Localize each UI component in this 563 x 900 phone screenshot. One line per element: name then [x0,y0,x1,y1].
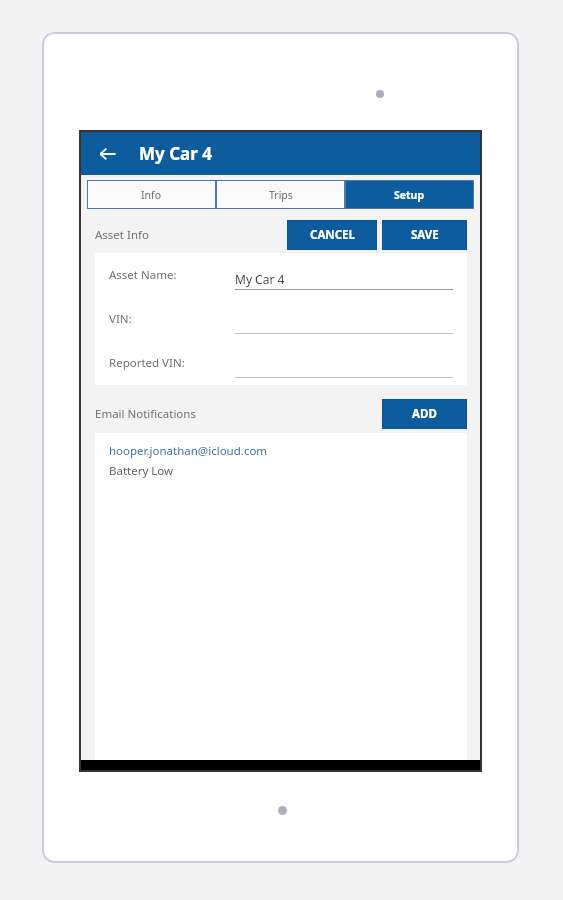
staticText: My Car 4 [139,142,212,165]
staticText: SAVE [411,227,439,243]
button[interactable]: Info [87,180,216,209]
staticText: Trips [269,188,293,202]
staticText: My Car 4 [235,271,285,287]
staticText: Setup [394,188,425,202]
button[interactable]: CANCEL [287,220,377,250]
staticText: CANCEL [310,227,355,243]
button[interactable]: Reported VIN: [95,341,467,385]
button[interactable]: SAVE [382,220,467,250]
staticText: hooper.jonathan@icloud.com [109,443,268,459]
button[interactable]: ADD [382,399,467,429]
staticText: Info [141,188,162,202]
button[interactable]: Setup [345,180,474,209]
button[interactable]: Back [91,137,125,171]
staticText: VIN: [109,311,132,327]
button[interactable]: VIN: [95,297,467,341]
staticText: ADD [412,406,437,422]
staticText: Asset Name: [109,267,177,283]
staticText: Battery Low [109,463,174,479]
staticText: Email Notifications [95,406,196,422]
staticText: Reported VIN: [109,355,185,371]
button[interactable]: Trips [216,180,345,209]
button[interactable]: hooper.jonathan@icloud.com [95,433,467,487]
button[interactable]: Asset Name: [95,253,467,297]
staticText: Asset Info [95,227,149,243]
